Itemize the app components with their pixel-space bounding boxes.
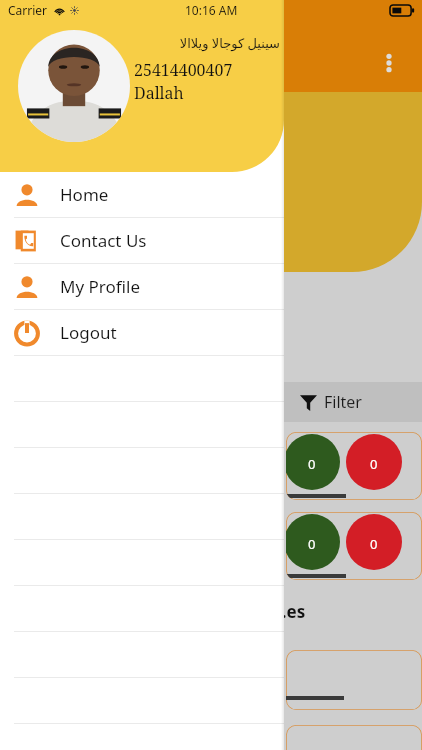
staticText: …es bbox=[272, 600, 306, 623]
staticText: Carrier bbox=[8, 2, 48, 18]
staticText: Home bbox=[60, 183, 109, 206]
button[interactable] bbox=[0, 402, 284, 448]
staticText: Dallah bbox=[134, 82, 184, 104]
staticText: Contact Us bbox=[60, 229, 147, 252]
staticText: 0 bbox=[308, 455, 316, 473]
button[interactable]: My Profile bbox=[0, 264, 284, 310]
button[interactable] bbox=[0, 540, 284, 586]
staticText: 0 bbox=[370, 535, 378, 553]
button[interactable]: Contact Us bbox=[0, 218, 284, 264]
button[interactable] bbox=[0, 586, 284, 632]
staticText: 0 bbox=[308, 535, 316, 553]
button[interactable]: Profile photo bbox=[18, 30, 130, 142]
button[interactable]: 0 bbox=[286, 432, 422, 500]
button[interactable] bbox=[0, 494, 284, 540]
button[interactable]: More options bbox=[372, 46, 406, 80]
button[interactable] bbox=[286, 725, 422, 750]
staticText: My Profile bbox=[60, 275, 140, 298]
button[interactable]: 0 bbox=[286, 512, 422, 580]
button[interactable] bbox=[0, 632, 284, 678]
staticText: Logout bbox=[60, 321, 117, 344]
button[interactable] bbox=[286, 650, 422, 710]
button[interactable]: Home bbox=[0, 172, 284, 218]
button[interactable]: Filter bbox=[0, 382, 422, 422]
staticText: 10:16 AM bbox=[185, 2, 238, 18]
staticText: Filter bbox=[324, 391, 362, 413]
button[interactable] bbox=[0, 448, 284, 494]
staticText: 25414400407 bbox=[134, 59, 233, 81]
staticText: سينيل كوجالا ويلاالا bbox=[134, 34, 280, 52]
staticText: 0 bbox=[370, 455, 378, 473]
button[interactable] bbox=[0, 678, 284, 724]
button[interactable]: Logout bbox=[0, 310, 284, 356]
button[interactable] bbox=[0, 356, 284, 402]
